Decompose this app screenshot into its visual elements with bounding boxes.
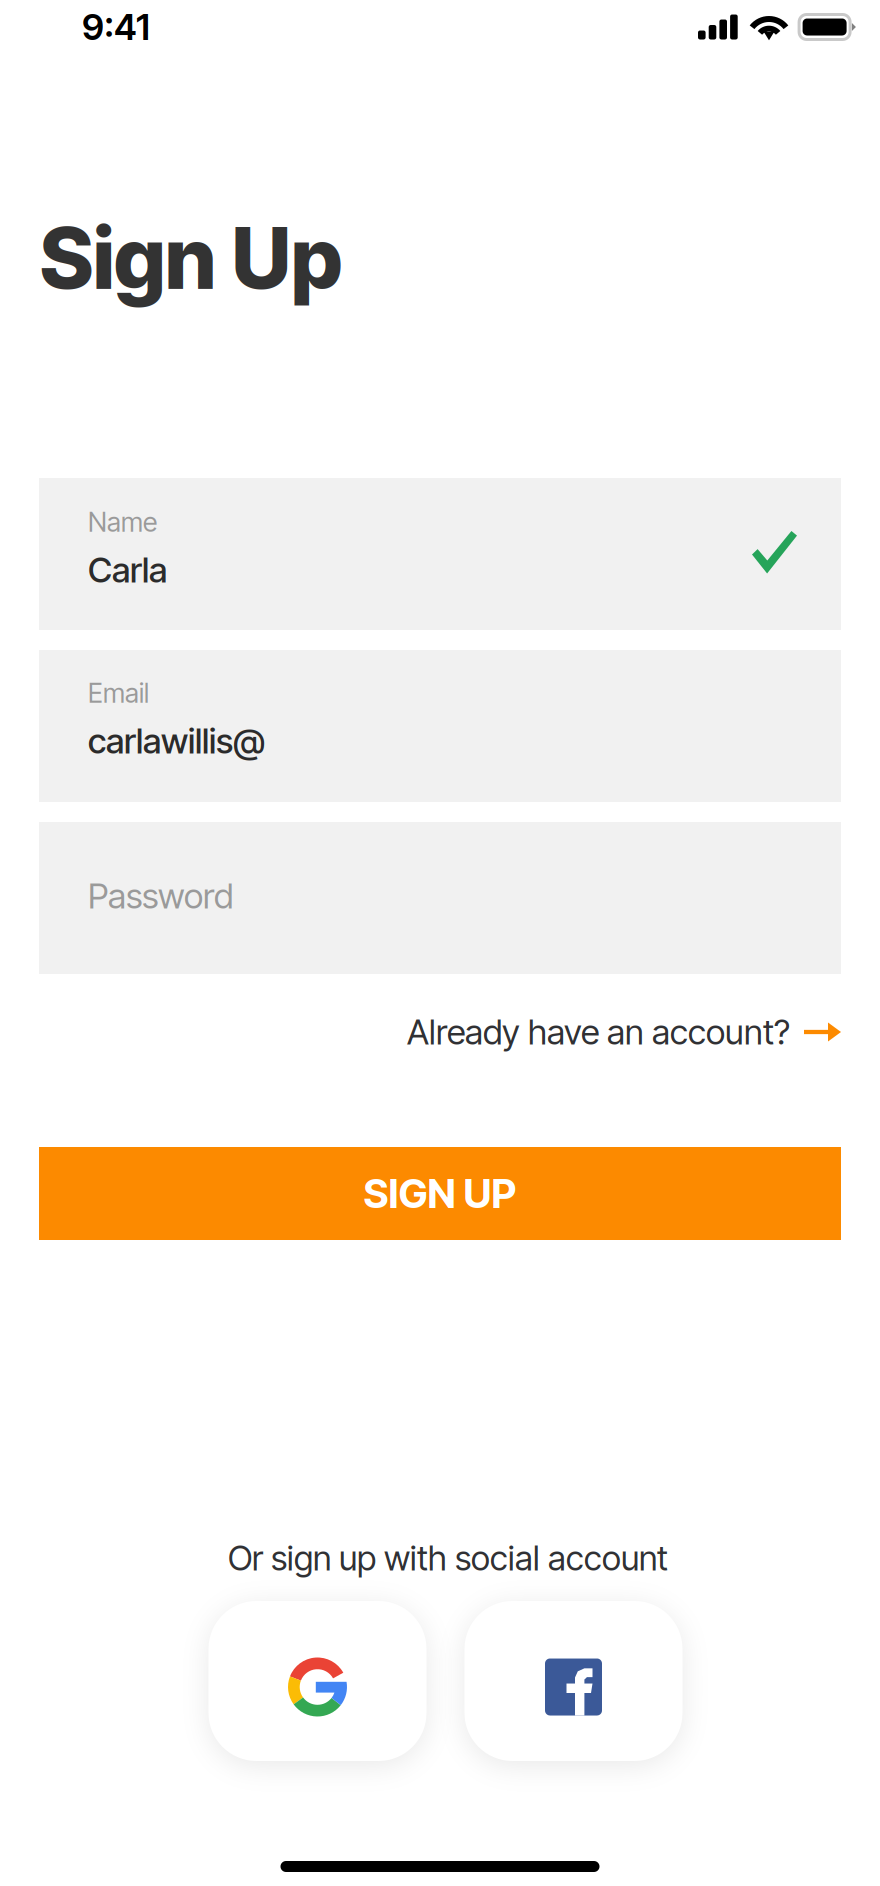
button[interactable]: Sign up with Facebook (464, 1601, 682, 1761)
staticText: Or sign up with social account (228, 1537, 668, 1579)
staticText: Name (88, 506, 157, 538)
staticText: Sign Up (40, 207, 342, 309)
staticText: 9:41 (82, 5, 150, 49)
staticText: carlawillis@ (88, 720, 265, 762)
button[interactable]: SIGN UP (39, 1147, 841, 1240)
staticText: Already have an account? (407, 1011, 790, 1053)
staticText: Email (88, 677, 149, 709)
button[interactable]: Sign up with Google (208, 1601, 426, 1761)
button[interactable]: Already have an account? (0, 1000, 880, 1064)
staticText: Carla (88, 549, 167, 591)
staticText: SIGN UP (363, 1169, 516, 1218)
staticText: Password (88, 875, 233, 917)
